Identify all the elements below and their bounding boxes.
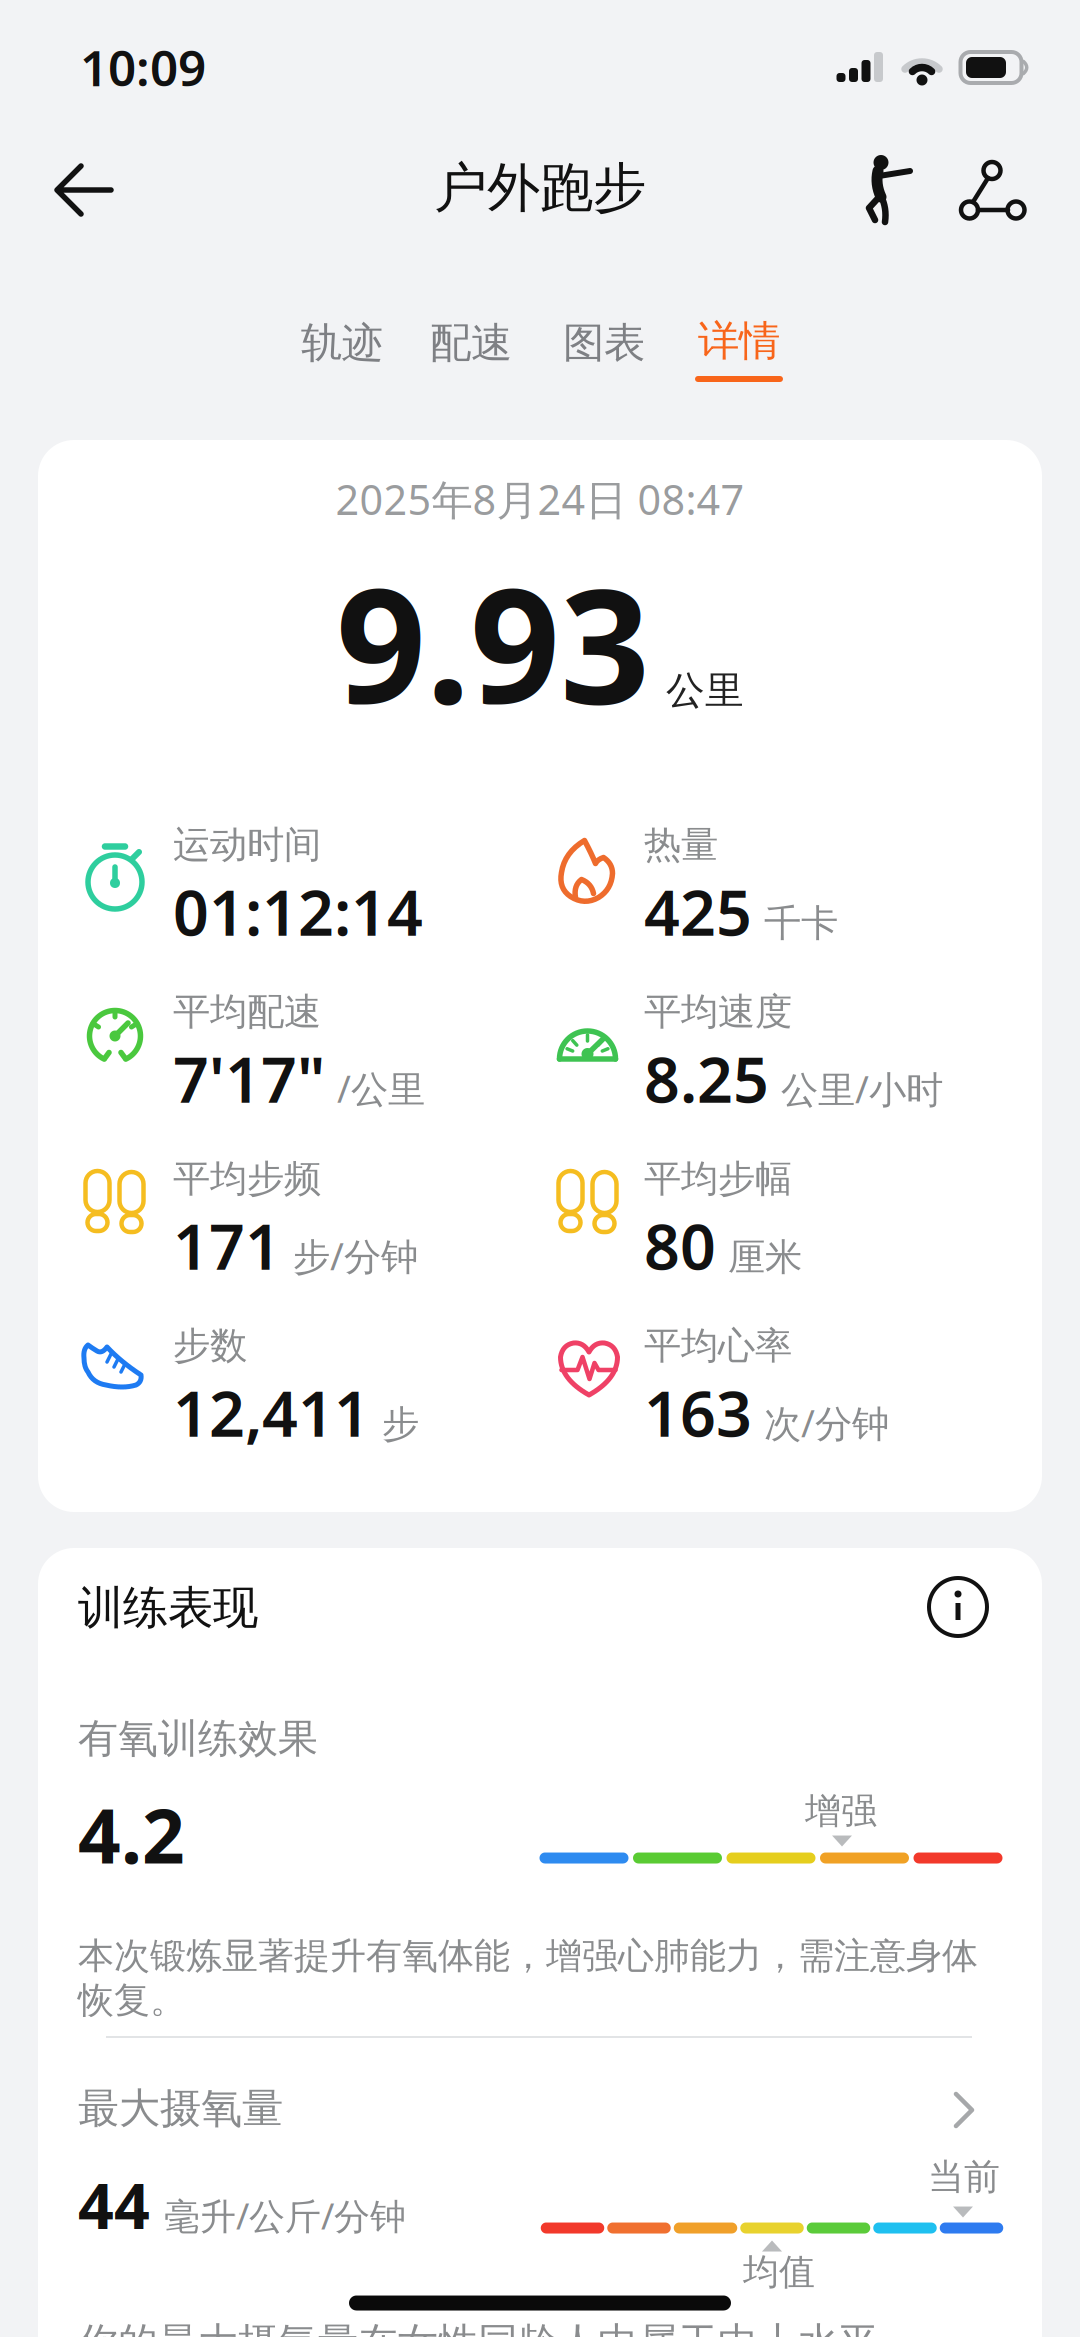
staticText: 平均速度 [644, 989, 792, 1035]
staticText: 8.25 [644, 1037, 769, 1120]
staticText: 图表 [563, 318, 645, 368]
staticText: 增强 [805, 1789, 877, 1833]
staticText: 平均步频 [173, 1156, 321, 1202]
staticText: 425 [644, 870, 752, 953]
staticText: 12,411 [173, 1371, 370, 1454]
button[interactable]: 配速 [430, 318, 512, 368]
staticText: 有氧训练效果 [78, 1714, 318, 1763]
staticText: 本次锻炼显著提升有氧体能，增强心肺能力，需注意身体恢复。 [78, 1934, 978, 2022]
staticText: 步数 [173, 1323, 247, 1369]
staticText: 当前 [928, 2155, 1000, 2199]
button[interactable]: 详情 [694, 319, 784, 383]
button[interactable]: 训练表现说明 [921, 1570, 995, 1644]
button[interactable]: 最大摄氧量详情 [78, 2078, 978, 2142]
staticText: 7'17" [173, 1037, 325, 1120]
staticText: 轨迹 [301, 318, 383, 368]
staticText: 千卡 [764, 900, 838, 946]
staticText: /公里 [337, 1063, 425, 1113]
button[interactable]: 返回 [40, 149, 128, 231]
staticText: 80 [644, 1204, 716, 1287]
staticText: 平均配速 [173, 989, 321, 1035]
staticText: 步/分钟 [293, 1231, 418, 1281]
staticText: 9.93 [336, 538, 650, 747]
staticText: 163 [644, 1371, 752, 1454]
staticText: 你的最大摄氧量在女性同龄人中属于中上水平 [78, 2318, 878, 2337]
staticText: 厘米 [728, 1234, 802, 1280]
staticText: 毫升/公斤/分钟 [164, 2192, 406, 2239]
staticText: 均值 [743, 2250, 815, 2294]
staticText: 2025年8月24日 08:47 [335, 472, 744, 526]
staticText: 4.2 [78, 1785, 185, 1884]
staticText: 公里 [666, 667, 744, 714]
staticText: 171 [173, 1204, 281, 1287]
button[interactable]: 分享轨迹 [951, 151, 1035, 231]
staticText: 平均步幅 [644, 1156, 792, 1202]
staticText: 运动时间 [173, 822, 321, 868]
staticText: 公里/小时 [781, 1064, 943, 1114]
button[interactable]: 跑步姿态 [855, 144, 923, 234]
button[interactable]: 图表 [563, 318, 645, 368]
staticText: 户外跑步 [434, 155, 646, 221]
staticText: 01:12:14 [173, 870, 423, 953]
staticText: 次/分钟 [764, 1398, 889, 1448]
staticText: 最大摄氧量 [78, 2083, 283, 2134]
staticText: 配速 [430, 318, 512, 368]
staticText: 步 [382, 1401, 419, 1447]
button[interactable]: 轨迹 [301, 318, 383, 368]
staticText: 44 [78, 2163, 150, 2246]
staticText: 平均心率 [644, 1323, 792, 1369]
staticText: 训练表现 [78, 1580, 258, 1636]
staticText: 10:09 [80, 34, 206, 100]
staticText: 详情 [698, 316, 780, 366]
staticText: 热量 [644, 822, 718, 868]
